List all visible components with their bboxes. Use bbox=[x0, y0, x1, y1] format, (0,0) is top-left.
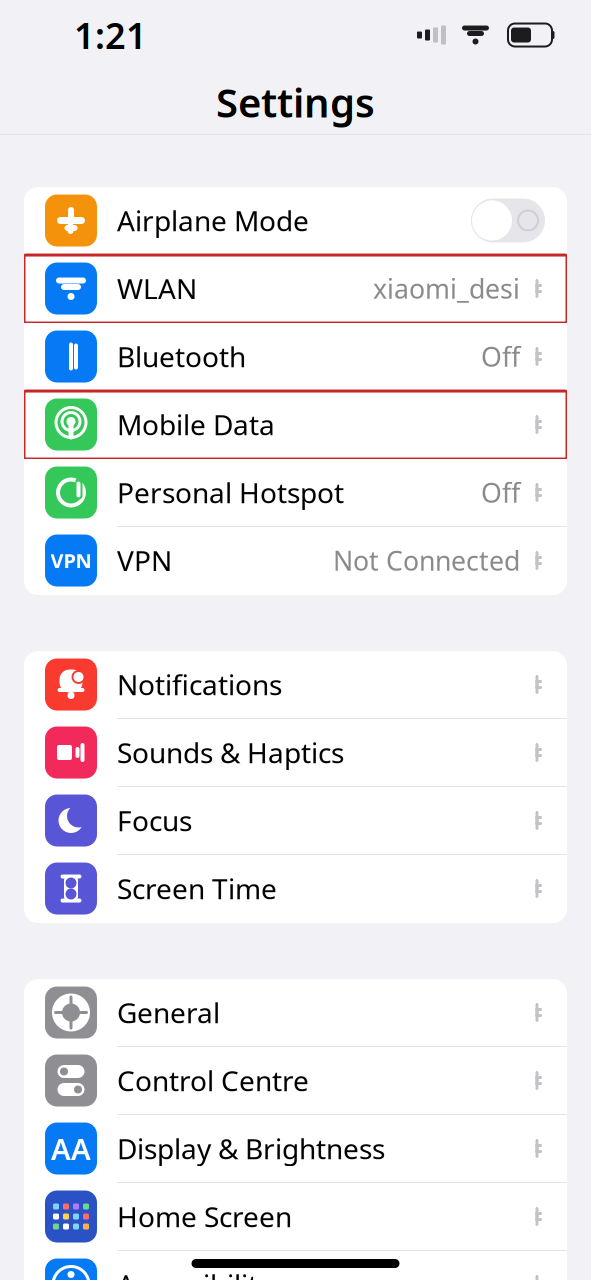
staticText: Screen Time bbox=[117, 870, 277, 907]
button[interactable]: AA bbox=[24, 1115, 567, 1183]
staticText: xiaomi_desi bbox=[373, 271, 520, 306]
staticText: Not Connected bbox=[333, 543, 520, 578]
staticText: VPN bbox=[50, 547, 91, 574]
button[interactable]: General bbox=[24, 979, 567, 1047]
button[interactable]: Notifications bbox=[24, 651, 567, 719]
staticText: Display & Brightness bbox=[117, 1130, 385, 1167]
staticText: Focus bbox=[117, 802, 192, 839]
button[interactable]: Bluetooth bbox=[24, 323, 567, 391]
staticText: Off bbox=[481, 339, 520, 374]
button[interactable]: Accessibility bbox=[24, 1251, 567, 1280]
staticText: Home Screen bbox=[117, 1198, 292, 1235]
staticText: AA bbox=[51, 1129, 91, 1168]
button[interactable]: Control Centre bbox=[24, 1047, 567, 1115]
button[interactable]: Sounds & Haptics bbox=[24, 719, 567, 787]
staticText: Bluetooth bbox=[117, 338, 246, 375]
staticText: Control Centre bbox=[117, 1062, 309, 1099]
button[interactable]: Home Screen bbox=[24, 1183, 567, 1251]
staticText: Off bbox=[481, 475, 520, 510]
button[interactable]: Personal Hotspot bbox=[24, 459, 567, 527]
staticText: VPN bbox=[117, 542, 172, 579]
button[interactable]: WLAN bbox=[24, 255, 567, 323]
button[interactable]: Screen Time bbox=[24, 855, 567, 923]
staticText: 1:21 bbox=[74, 11, 147, 59]
button[interactable]: Focus bbox=[24, 787, 567, 855]
staticText: Notifications bbox=[117, 666, 282, 703]
staticText: Sounds & Haptics bbox=[117, 734, 344, 771]
staticText: WLAN bbox=[117, 270, 197, 307]
staticText: Personal Hotspot bbox=[117, 474, 344, 511]
button[interactable]: Airplane Mode bbox=[24, 187, 567, 255]
staticText: Mobile Data bbox=[117, 406, 275, 443]
staticText: Settings bbox=[216, 75, 375, 128]
staticText: Accessibility bbox=[117, 1266, 272, 1280]
staticText: General bbox=[117, 994, 220, 1031]
button[interactable]: Mobile Data bbox=[24, 391, 567, 459]
button[interactable]: VPN bbox=[24, 527, 567, 595]
staticText: Airplane Mode bbox=[117, 202, 309, 239]
